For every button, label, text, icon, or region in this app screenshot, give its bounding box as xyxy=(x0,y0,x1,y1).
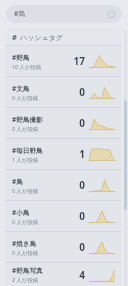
staticText: 0 xyxy=(69,85,85,99)
button[interactable]: #鳥 xyxy=(5,170,121,200)
staticText: #鳥 xyxy=(14,9,26,19)
staticText: 10 人が投稿 xyxy=(12,63,42,70)
staticText: 17 xyxy=(69,54,85,68)
staticText: ハッシュタグ xyxy=(20,33,63,42)
staticText: #野鳥 xyxy=(12,53,30,62)
button[interactable]: #鳥 xyxy=(6,5,122,23)
staticText: #鳥 xyxy=(12,177,23,186)
staticText: 0 xyxy=(69,178,85,192)
staticText: 0 人が投稿 xyxy=(12,94,39,101)
staticText: #毎日野鳥 xyxy=(12,146,43,155)
button[interactable]: #毎日野鳥 xyxy=(5,139,121,169)
button[interactable]: #野鳥 xyxy=(5,46,121,76)
staticText: 2 人が投稿 xyxy=(12,276,39,283)
staticText: 0 人が投稿 xyxy=(12,187,39,194)
staticText: #小鳥 xyxy=(12,208,30,217)
staticText: 0 xyxy=(69,209,85,223)
staticText: 0 xyxy=(69,116,85,130)
staticText: 0 人が投稿 xyxy=(12,249,39,256)
staticText: 4 xyxy=(69,268,85,282)
staticText: 1 人が投稿 xyxy=(12,156,39,163)
button[interactable]: #文鳥 xyxy=(5,77,121,107)
staticText: #野鳥写真 xyxy=(12,266,43,275)
staticText: 1 xyxy=(69,147,85,161)
staticText: #野鳥撮影 xyxy=(12,115,43,124)
staticText: #文鳥 xyxy=(12,84,30,93)
staticText: 0 人が投稿 xyxy=(12,218,39,225)
staticText: 0 人が投稿 xyxy=(12,125,39,132)
staticText: # xyxy=(12,32,17,42)
button[interactable]: #焼き鳥 xyxy=(5,232,121,262)
button[interactable]: #野鳥写真 xyxy=(5,263,121,286)
staticText: #焼き鳥 xyxy=(12,239,37,248)
button[interactable]: Clear search xyxy=(106,9,116,19)
button[interactable]: #小鳥 xyxy=(5,201,121,231)
button[interactable]: #野鳥撮影 xyxy=(5,108,121,138)
staticText: 0 xyxy=(69,240,85,254)
